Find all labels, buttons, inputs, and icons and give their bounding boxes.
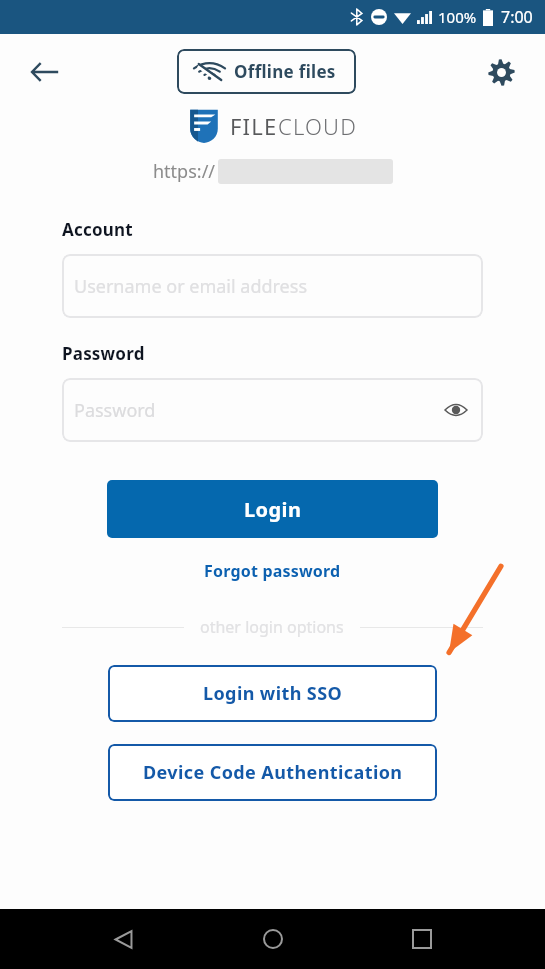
staticText: Password	[62, 342, 145, 365]
button[interactable]: Home	[247, 913, 299, 965]
staticText: https://	[153, 159, 216, 184]
staticText: 7:00	[501, 6, 533, 28]
staticText: Password	[74, 398, 156, 423]
staticText: Login with SSO	[203, 681, 343, 706]
button[interactable]: Login	[107, 480, 438, 538]
button[interactable]: Password	[62, 378, 483, 442]
staticText: other login options	[200, 616, 344, 638]
button[interactable]: Device Code Authentication	[108, 744, 437, 801]
staticText: Login	[244, 496, 302, 523]
button[interactable]: Offline files	[177, 49, 356, 94]
button[interactable]: Back	[97, 913, 149, 965]
button[interactable]: Back	[22, 50, 66, 94]
button[interactable]: Show password	[441, 395, 471, 425]
staticText: CLOUD	[278, 111, 357, 141]
staticText: Offline files	[234, 60, 336, 83]
staticText: Forgot password	[204, 560, 341, 582]
button[interactable]: Forgot password	[200, 556, 345, 586]
staticText: Device Code Authentication	[143, 760, 403, 785]
staticText: FILE	[230, 111, 278, 141]
button[interactable]: Recent apps	[396, 913, 448, 965]
staticText: Username or email address	[74, 274, 308, 299]
staticText: Account	[62, 218, 133, 241]
button[interactable]: Login with SSO	[108, 665, 437, 722]
button[interactable]: Settings	[479, 50, 523, 94]
staticText: 100%	[438, 7, 477, 27]
button[interactable]: Username or email address	[62, 254, 483, 318]
